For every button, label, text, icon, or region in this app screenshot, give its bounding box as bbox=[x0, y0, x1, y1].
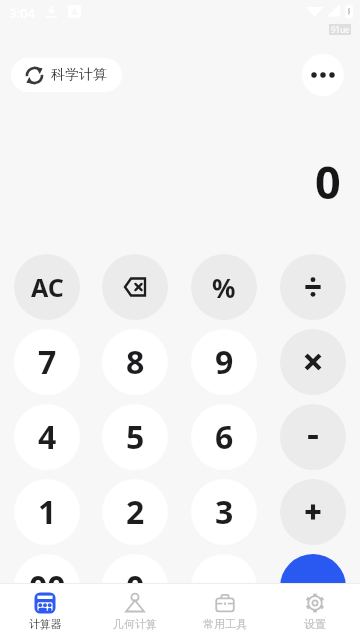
button[interactable]: 几何计算 bbox=[90, 583, 180, 639]
staticText: AC bbox=[31, 270, 64, 304]
staticText: 7 bbox=[38, 340, 57, 384]
button[interactable] bbox=[280, 329, 346, 395]
staticText: 0 bbox=[315, 151, 341, 212]
button[interactable]: AC bbox=[14, 254, 80, 320]
button[interactable]: 9 bbox=[191, 329, 257, 395]
button[interactable]: 8 bbox=[102, 329, 168, 395]
staticText: 科学计算 bbox=[51, 66, 107, 84]
button[interactable]: 2 bbox=[102, 479, 168, 545]
button[interactable]: 设置 bbox=[270, 583, 360, 639]
button[interactable]: 常用工具 bbox=[180, 583, 270, 639]
staticText: 常用工具 bbox=[203, 617, 247, 631]
staticText: % bbox=[212, 270, 236, 305]
button[interactable] bbox=[280, 404, 346, 470]
staticText: 3 bbox=[215, 490, 234, 534]
button[interactable]: 00 bbox=[14, 554, 80, 620]
button[interactable]: . bbox=[191, 554, 257, 620]
staticText: 设置 bbox=[304, 617, 326, 631]
button[interactable] bbox=[302, 54, 344, 96]
button[interactable] bbox=[280, 254, 346, 320]
button[interactable]: 4 bbox=[14, 404, 80, 470]
staticText: 6 bbox=[215, 415, 234, 459]
staticText: 00 bbox=[29, 565, 66, 609]
button[interactable]: 1 bbox=[14, 479, 80, 545]
staticText: 计算器 bbox=[29, 617, 62, 631]
staticText: . bbox=[220, 565, 229, 609]
staticText: 5 bbox=[126, 415, 145, 459]
staticText: 8 bbox=[126, 340, 145, 384]
staticText: 91ue bbox=[331, 24, 350, 35]
button[interactable]: 7 bbox=[14, 329, 80, 395]
button[interactable]: 6 bbox=[191, 404, 257, 470]
staticText: 4 bbox=[38, 415, 57, 459]
button[interactable] bbox=[102, 254, 168, 320]
button[interactable]: 3 bbox=[191, 479, 257, 545]
staticText: 2 bbox=[126, 490, 145, 534]
button[interactable]: % bbox=[191, 254, 257, 320]
staticText: = bbox=[304, 566, 322, 608]
button[interactable]: 计算器 bbox=[0, 583, 90, 639]
staticText: 9 bbox=[215, 340, 234, 384]
button[interactable]: 0 bbox=[102, 554, 168, 620]
button[interactable]: 科学计算 bbox=[11, 58, 122, 92]
button[interactable]: = bbox=[280, 554, 346, 620]
button[interactable] bbox=[280, 479, 346, 545]
staticText: 0 bbox=[126, 565, 145, 609]
staticText: 1 bbox=[38, 490, 57, 534]
staticText: 几何计算 bbox=[113, 617, 157, 631]
button[interactable]: 5 bbox=[102, 404, 168, 470]
